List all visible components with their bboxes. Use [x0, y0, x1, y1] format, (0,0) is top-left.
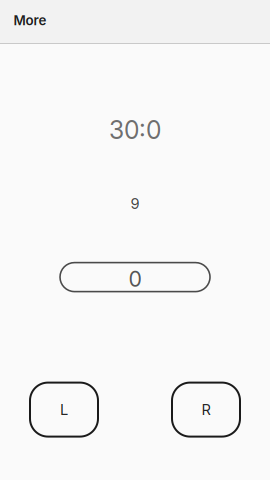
- staticText: 0: [128, 266, 141, 292]
- staticText: 30:0: [109, 115, 161, 145]
- staticText: L: [60, 401, 68, 418]
- button[interactable]: 0: [60, 263, 210, 292]
- button[interactable]: L: [30, 383, 98, 437]
- staticText: R: [201, 401, 210, 418]
- staticText: 9: [130, 195, 139, 212]
- staticText: More: [13, 12, 46, 28]
- button[interactable]: R: [172, 383, 240, 437]
